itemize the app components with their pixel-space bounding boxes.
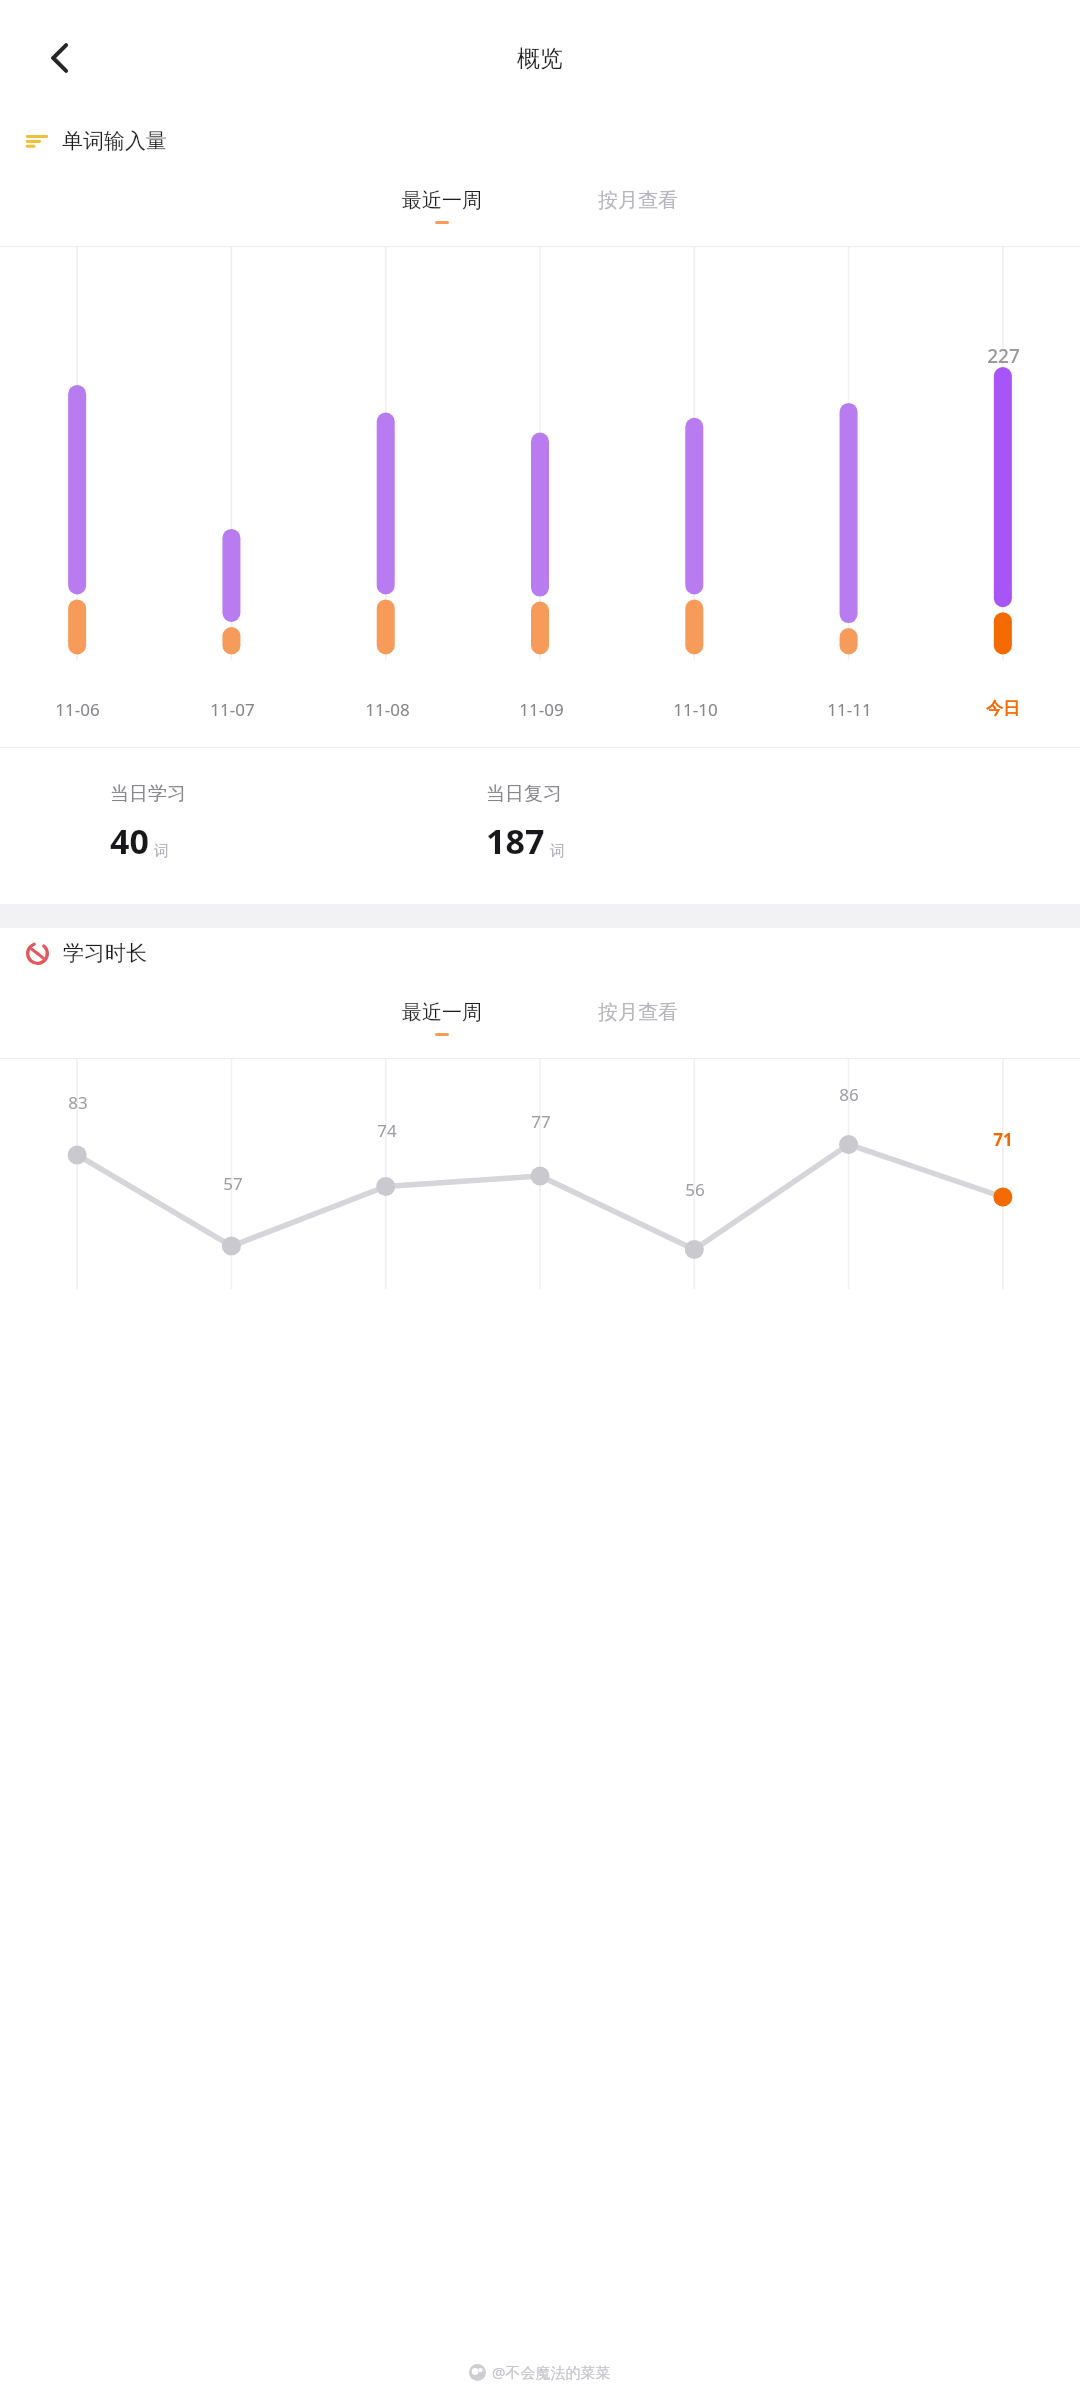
staticText: 学习时长 <box>63 940 147 966</box>
staticText: 最近一周 <box>402 1000 482 1025</box>
staticText: 83 <box>68 1091 88 1114</box>
button[interactable]: 最近一周 <box>382 180 502 232</box>
staticText: 词 <box>154 842 169 861</box>
staticText: 概览 <box>517 44 563 73</box>
staticText: @不会魔法的菜菜 <box>492 2362 611 2382</box>
button[interactable]: 按月查看 <box>578 180 698 232</box>
staticText: 77 <box>531 1110 551 1133</box>
staticText: 当日学习 <box>110 782 186 806</box>
staticText: 词 <box>550 842 565 861</box>
staticText: 按月查看 <box>598 1000 678 1025</box>
button[interactable]: 最近一周 <box>382 992 502 1044</box>
staticText: 71 <box>993 1128 1013 1151</box>
staticText: 11-11 <box>827 698 872 721</box>
staticText: 按月查看 <box>598 188 678 213</box>
staticText: 11-08 <box>365 698 410 721</box>
staticText: 今日 <box>986 698 1020 719</box>
button[interactable]: 按月查看 <box>578 992 698 1044</box>
staticText: 56 <box>685 1178 705 1201</box>
staticText: 40 <box>110 818 149 864</box>
staticText: 单词输入量 <box>62 128 167 154</box>
staticText: 74 <box>377 1119 397 1142</box>
staticText: 11-06 <box>55 698 100 721</box>
staticText: 57 <box>223 1172 243 1195</box>
staticText: 11-10 <box>673 698 718 721</box>
staticText: 187 <box>486 818 545 864</box>
button[interactable]: Back <box>30 28 90 88</box>
staticText: 86 <box>839 1083 859 1106</box>
staticText: 最近一周 <box>402 188 482 213</box>
staticText: 11-09 <box>519 698 564 721</box>
staticText: 当日复习 <box>486 782 562 806</box>
staticText: 227 <box>987 343 1020 369</box>
staticText: 11-07 <box>210 698 255 721</box>
